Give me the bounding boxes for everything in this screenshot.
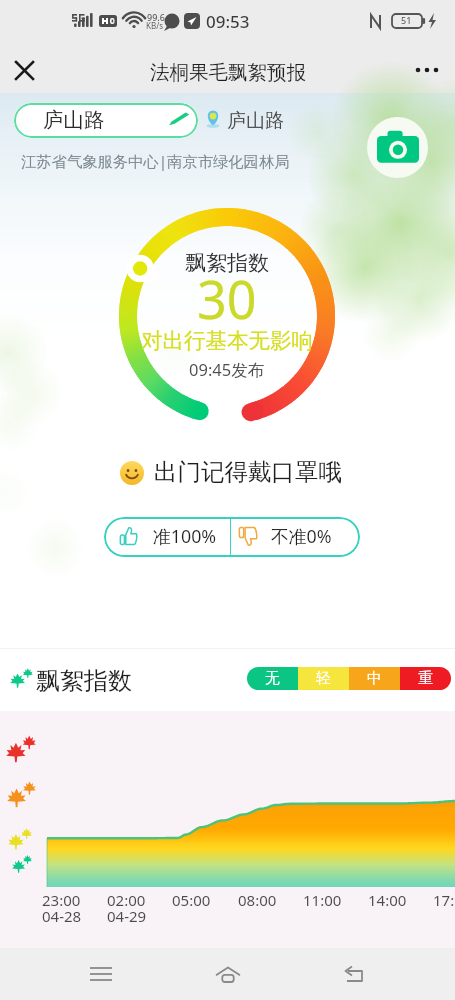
- staticText: 04-29: [107, 906, 147, 926]
- staticText: 08:00: [238, 890, 277, 910]
- button[interactable]: [14, 103, 198, 138]
- staticText: 04-28: [42, 906, 82, 926]
- staticText: 14:00: [368, 890, 407, 910]
- staticText: 09:45发布: [189, 358, 265, 381]
- staticText: 飘絮指数: [185, 250, 269, 276]
- staticText: 庐山路: [43, 107, 105, 133]
- staticText: 法桐果毛飘絮预报: [150, 60, 306, 85]
- staticText: 09:53: [206, 10, 250, 33]
- button[interactable]: 轻: [298, 667, 349, 690]
- button[interactable]: 中: [349, 667, 400, 690]
- button[interactable]: 无: [247, 667, 298, 690]
- button[interactable]: Recents: [75, 948, 127, 1000]
- staticText: 23:00: [42, 890, 81, 910]
- button[interactable]: Camera: [367, 117, 428, 178]
- staticText: 不准0%: [271, 524, 332, 548]
- staticText: 出门记得戴口罩哦: [154, 457, 342, 487]
- button[interactable]: Back: [328, 948, 380, 1000]
- button[interactable]: 重: [400, 667, 451, 690]
- staticText: 51: [401, 14, 412, 26]
- button[interactable]: 不准0%: [231, 517, 360, 557]
- button[interactable]: Home: [202, 948, 254, 1000]
- staticText: KB/s: [146, 20, 163, 31]
- staticText: 05:00: [172, 890, 211, 910]
- staticText: 17:00: [433, 890, 455, 910]
- staticText: 30: [197, 263, 257, 334]
- staticText: 99.6: [147, 11, 165, 23]
- staticText: 无: [265, 669, 280, 688]
- staticText: 准100%: [153, 524, 217, 548]
- button[interactable]: More options: [407, 50, 447, 90]
- button[interactable]: Close: [4, 50, 44, 90]
- staticText: 江苏省气象服务中心|南京市绿化园林局: [21, 151, 290, 172]
- staticText: 02:00: [107, 890, 146, 910]
- staticText: 轻: [316, 669, 331, 688]
- button[interactable]: 准100%: [104, 517, 230, 557]
- staticText: 飘絮指数: [36, 666, 132, 696]
- staticText: 中: [367, 669, 382, 688]
- staticText: 对出行基本无影响: [141, 327, 313, 354]
- staticText: 庐山路: [227, 109, 284, 133]
- staticText: 重: [418, 669, 433, 688]
- staticText: 11:00: [303, 890, 342, 910]
